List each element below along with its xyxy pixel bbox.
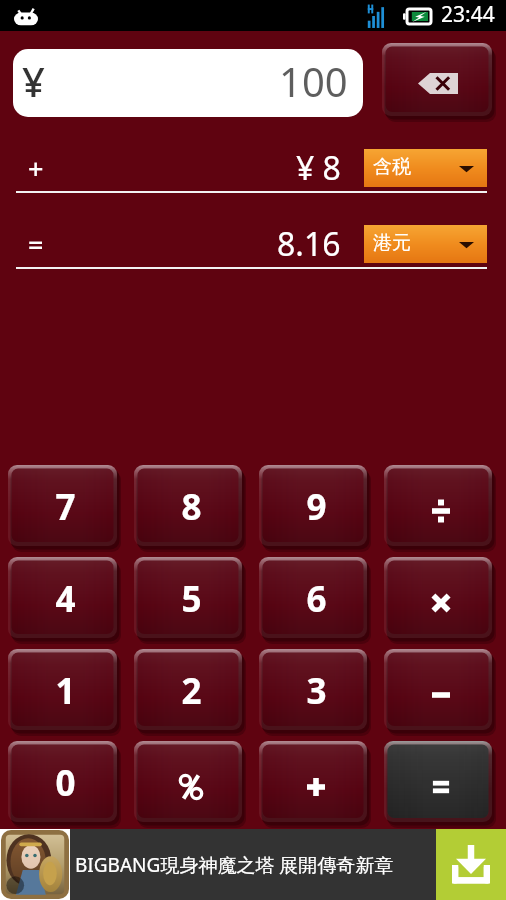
staticText: ¥: [22, 54, 45, 108]
button[interactable]: Download: [436, 829, 506, 900]
staticText: 含税: [373, 155, 411, 179]
button[interactable]: 8: [134, 465, 248, 553]
button[interactable]: 6: [259, 557, 373, 645]
staticText: +: [28, 150, 44, 187]
staticText: ¥ 8: [296, 146, 341, 190]
staticText: 港元: [373, 231, 411, 255]
button[interactable]: [1, 830, 69, 899]
staticText: 8: [181, 483, 202, 531]
button[interactable]: 7: [8, 465, 123, 553]
staticText: 1: [55, 667, 76, 715]
button[interactable]: [384, 741, 498, 829]
button[interactable]: 港元: [364, 225, 487, 263]
staticText: 100: [279, 54, 348, 108]
button[interactable]: 5: [134, 557, 248, 645]
staticText: 23:44: [441, 0, 495, 29]
other: Backspace: [382, 43, 498, 123]
staticText: =: [28, 226, 44, 263]
button[interactable]: [384, 465, 498, 553]
staticText: 6: [306, 575, 327, 623]
button[interactable]: [384, 649, 498, 737]
button[interactable]: 9: [259, 465, 373, 553]
button[interactable]: [382, 43, 498, 123]
button[interactable]: 3: [259, 649, 373, 737]
button[interactable]: 含税: [364, 149, 487, 187]
staticText: BIGBANG現身神魔之塔 展開傳奇新章: [75, 852, 394, 878]
button[interactable]: [134, 741, 248, 829]
staticText: 7: [55, 483, 76, 531]
button[interactable]: [384, 557, 498, 645]
button[interactable]: 0: [8, 741, 123, 829]
button[interactable]: 4: [8, 557, 123, 645]
button[interactable]: 2: [134, 649, 248, 737]
button[interactable]: 1: [8, 649, 123, 737]
staticText: 3: [306, 667, 327, 715]
staticText: 0: [55, 759, 76, 807]
staticText: 9: [306, 483, 327, 531]
staticText: 2: [181, 667, 202, 715]
button[interactable]: [259, 741, 373, 829]
staticText: 8.16: [277, 222, 341, 266]
button[interactable]: ¥: [13, 49, 363, 117]
staticText: 5: [181, 575, 202, 623]
staticText: 4: [55, 575, 76, 623]
